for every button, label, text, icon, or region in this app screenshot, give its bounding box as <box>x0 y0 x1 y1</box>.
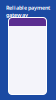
staticText: Reliable payment gateway <box>6 4 50 18</box>
